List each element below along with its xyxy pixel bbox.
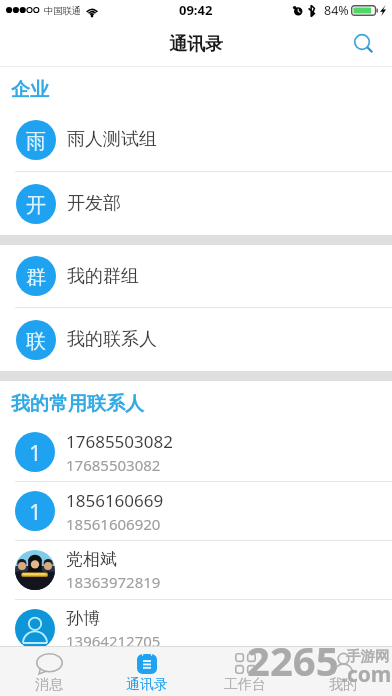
staticText: 我的	[329, 676, 357, 694]
button[interactable]: 联	[0, 308, 392, 371]
button[interactable]: 1	[0, 423, 392, 481]
button[interactable]: 党相斌	[0, 541, 392, 599]
staticText: 雨	[26, 129, 46, 154]
staticText: 消息	[35, 676, 63, 694]
staticText: 1	[29, 496, 42, 526]
button[interactable]: 孙博	[0, 600, 392, 658]
staticText: 雨人测试组	[67, 128, 157, 151]
button[interactable]: 雨	[0, 108, 392, 171]
staticText: 开	[26, 193, 46, 218]
button[interactable]: 我的	[294, 646, 392, 696]
staticText: 开发部	[67, 192, 121, 215]
button[interactable]: 开	[0, 172, 392, 235]
staticText: 1	[29, 437, 42, 467]
staticText: 18561606920	[66, 514, 161, 534]
button[interactable]: Search	[344, 24, 384, 64]
staticText: 我的常用联系人	[11, 392, 144, 416]
staticText: 2265	[247, 633, 339, 687]
staticText: 我的群组	[67, 265, 139, 288]
staticText: 联	[26, 329, 46, 354]
staticText: 通讯录	[169, 33, 223, 56]
staticText: 09:42	[179, 1, 213, 19]
staticText: 13964212705	[66, 631, 161, 651]
button[interactable]: 消息	[0, 646, 98, 696]
staticText: 工作台	[224, 676, 266, 694]
staticText: 中国联通	[44, 5, 81, 17]
staticText: 17685503082	[66, 430, 173, 453]
staticText: 18363972819	[66, 572, 161, 592]
button[interactable]: 工作台	[196, 646, 294, 696]
staticText: 17685503082	[66, 455, 161, 475]
button[interactable]: 1	[0, 482, 392, 540]
button[interactable]: 通讯录	[98, 646, 196, 696]
staticText: 企业	[11, 78, 49, 102]
staticText: .com	[341, 660, 392, 689]
staticText: 手游网	[346, 647, 390, 665]
staticText: 通讯录	[126, 676, 168, 694]
staticText: 党相斌	[66, 549, 117, 570]
staticText: 孙博	[66, 608, 100, 629]
button[interactable]: 群	[0, 245, 392, 307]
staticText: 群	[26, 265, 46, 290]
staticText: 1856160669	[66, 489, 164, 512]
staticText: 我的联系人	[67, 328, 157, 351]
staticText: 84%	[324, 2, 349, 19]
